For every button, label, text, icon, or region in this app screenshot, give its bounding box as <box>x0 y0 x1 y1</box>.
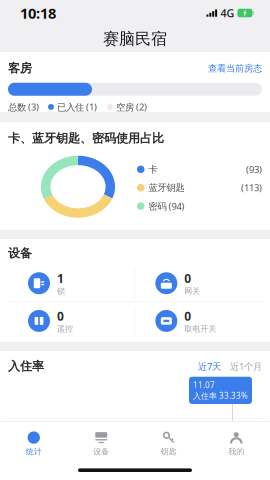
staticText: 4G <box>220 6 234 20</box>
staticText: 客房 <box>8 61 32 76</box>
staticText: 近1个月 <box>230 360 262 373</box>
button[interactable]: 遥控 <box>28 308 135 334</box>
staticText: 入住率 33.33% <box>193 390 248 401</box>
staticText: 入住率 <box>8 359 44 374</box>
button[interactable]: 锁 <box>28 270 135 296</box>
staticText: 近7天 <box>198 360 221 373</box>
button[interactable]: 钥匙 <box>135 427 202 460</box>
staticText: 统计 <box>26 447 42 456</box>
staticText: 空房 (2) <box>116 101 147 113</box>
staticText: 蓝牙钥匙 <box>148 182 184 193</box>
button[interactable]: 网关 <box>155 270 262 296</box>
staticText: 查看当前房态 <box>208 63 262 74</box>
staticText: 密码 (94) <box>148 200 184 212</box>
staticText: 遥控 <box>57 324 73 334</box>
button[interactable]: 近7天 <box>198 360 221 373</box>
button[interactable]: 我的 <box>202 427 270 460</box>
staticText: (93) <box>246 163 262 175</box>
staticText: 我的 <box>228 447 244 456</box>
staticText: 锁 <box>57 286 65 296</box>
button[interactable]: 查看当前房态 <box>208 63 262 74</box>
staticText: 11.07 <box>193 380 215 390</box>
staticText: 0 <box>57 308 64 324</box>
staticText: 总数 (3) <box>8 101 39 113</box>
staticText: 设备 <box>93 447 109 456</box>
staticText: 钥匙 <box>161 447 177 456</box>
staticText: 0 <box>184 308 191 324</box>
button[interactable]: 近1个月 <box>230 360 262 373</box>
button[interactable]: 设备 <box>67 427 135 460</box>
staticText: 卡、蓝牙钥匙、密码使用占比 <box>8 131 164 146</box>
staticText: (113) <box>241 181 262 194</box>
staticText: 10:18 <box>20 3 56 23</box>
staticText: 1 <box>57 270 64 286</box>
staticText: 取电开关 <box>184 324 216 334</box>
staticText: 卡 <box>148 164 157 175</box>
button[interactable]: 取电开关 <box>155 308 262 334</box>
staticText: 设备 <box>8 246 32 261</box>
staticText: 0 <box>184 270 191 286</box>
staticText: 网关 <box>184 286 200 296</box>
button[interactable]: 统计 <box>0 427 67 460</box>
staticText: 赛脑民宿 <box>103 29 167 49</box>
staticText: 已入住 (1) <box>57 101 97 113</box>
